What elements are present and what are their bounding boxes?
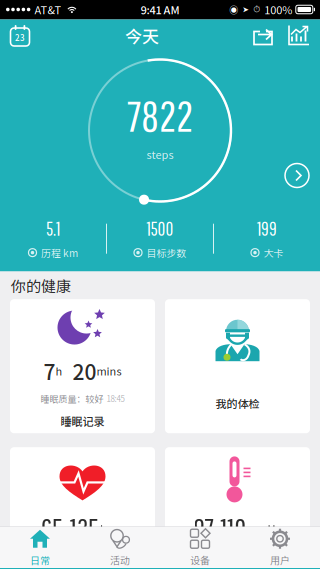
button[interactable]: 97-110 [165,447,310,569]
staticText: 目标步数 [146,245,186,260]
button[interactable]: 设备 [160,528,240,566]
button[interactable]: 7 [10,299,155,433]
staticText: 睡眠记录 [60,413,104,429]
staticText: 今天 [125,23,159,48]
staticText: 1500 [146,217,173,239]
button[interactable]: 65-135 [10,447,155,569]
staticText: 心率记录 [58,553,106,569]
staticText: bpm [100,521,124,536]
staticText: 9:41 AM [140,1,179,17]
staticText: 7 [43,355,55,386]
button[interactable]: 我的体检 [165,299,310,433]
staticText: ◉ [229,3,238,16]
button[interactable]: 日常 [0,528,80,566]
staticText: AT&T [34,1,61,17]
button[interactable]: Calendar [0,23,32,47]
staticText: 100% [264,1,292,17]
staticText: ⏱ [253,5,260,14]
staticText: 199 [257,217,277,239]
staticText: 你的健康 [11,274,71,296]
staticText: 7822 [127,91,193,140]
staticText: h [55,363,62,379]
staticText: 5.1 [46,217,60,239]
staticText: 设备 [190,553,210,567]
staticText: 睡眠质量：较好 [40,392,103,405]
staticText: 历程 km [41,245,78,260]
button[interactable]: Statistics [274,24,320,46]
staticText: 97-110 [193,512,246,545]
staticText: mmHg [247,521,281,536]
staticText: 用户 [270,553,290,567]
staticText: 18:45 [106,393,124,404]
staticText: 65-135 [41,512,99,545]
button[interactable]: 用户 [240,528,320,566]
staticText: 20 [62,355,96,386]
staticText: 活动 [110,553,130,567]
staticText: steps [146,146,173,162]
staticText: mins [96,363,121,379]
button[interactable]: 活动 [80,528,160,566]
staticText: ➤ [242,5,249,14]
staticText: 23 [15,32,25,43]
button[interactable]: Next [282,160,312,190]
staticText: 日常 [30,553,50,567]
staticText: 血压记录 [213,553,261,569]
staticText: 我的体检 [215,395,259,411]
staticText: 大卡 [263,245,283,260]
button[interactable]: Share [252,24,274,46]
